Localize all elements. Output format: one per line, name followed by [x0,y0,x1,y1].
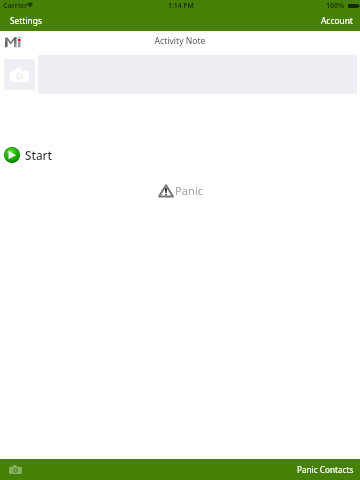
button[interactable]: Account [311,11,360,30]
staticText: Panic [175,183,204,198]
staticText: Start [25,147,53,163]
staticText: Carrier [3,1,28,11]
staticText: Settings [10,15,42,26]
button[interactable]: Start [3,145,54,165]
button[interactable]: Add photo [4,59,35,90]
staticText: Account [321,15,353,26]
staticText: Panic Contacts [297,464,354,475]
button[interactable]: Camera [0,462,31,477]
button[interactable]: Settings [0,11,52,30]
staticText: Activity Note [0,35,360,47]
button[interactable]: Panic Contacts [287,461,360,478]
button[interactable]: Panic [158,182,204,199]
staticText: 1:14 PM [168,1,194,10]
staticText: 100% [326,1,345,11]
